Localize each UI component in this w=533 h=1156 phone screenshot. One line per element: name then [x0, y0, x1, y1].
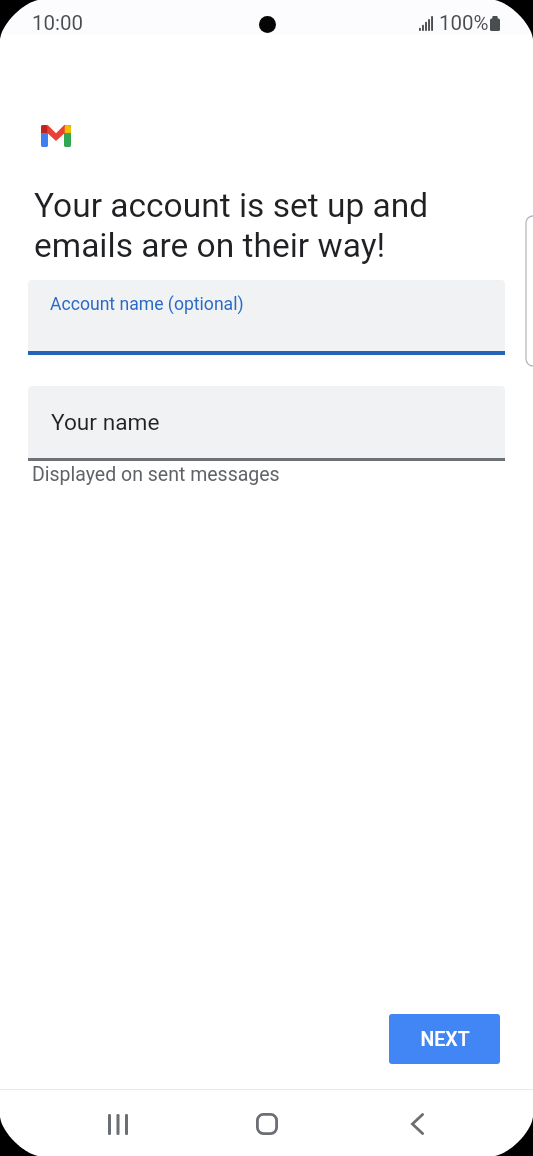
staticText: Account name (optional): [50, 294, 244, 315]
button[interactable]: Home: [237, 1096, 297, 1152]
button[interactable]: Back: [387, 1096, 447, 1152]
staticText: 10:00: [32, 11, 84, 35]
button[interactable]: NEXT: [389, 1014, 500, 1064]
button[interactable]: Account name (optional): [28, 280, 505, 351]
staticText: Your name: [51, 409, 160, 436]
staticText: 100%: [439, 11, 489, 35]
staticText: NEXT: [420, 1028, 470, 1051]
button[interactable]: Recent apps: [88, 1096, 148, 1152]
button[interactable]: Your name: [28, 386, 505, 458]
staticText: Your account is set up and emails are on…: [34, 186, 429, 265]
staticText: Displayed on sent messages: [32, 463, 280, 486]
